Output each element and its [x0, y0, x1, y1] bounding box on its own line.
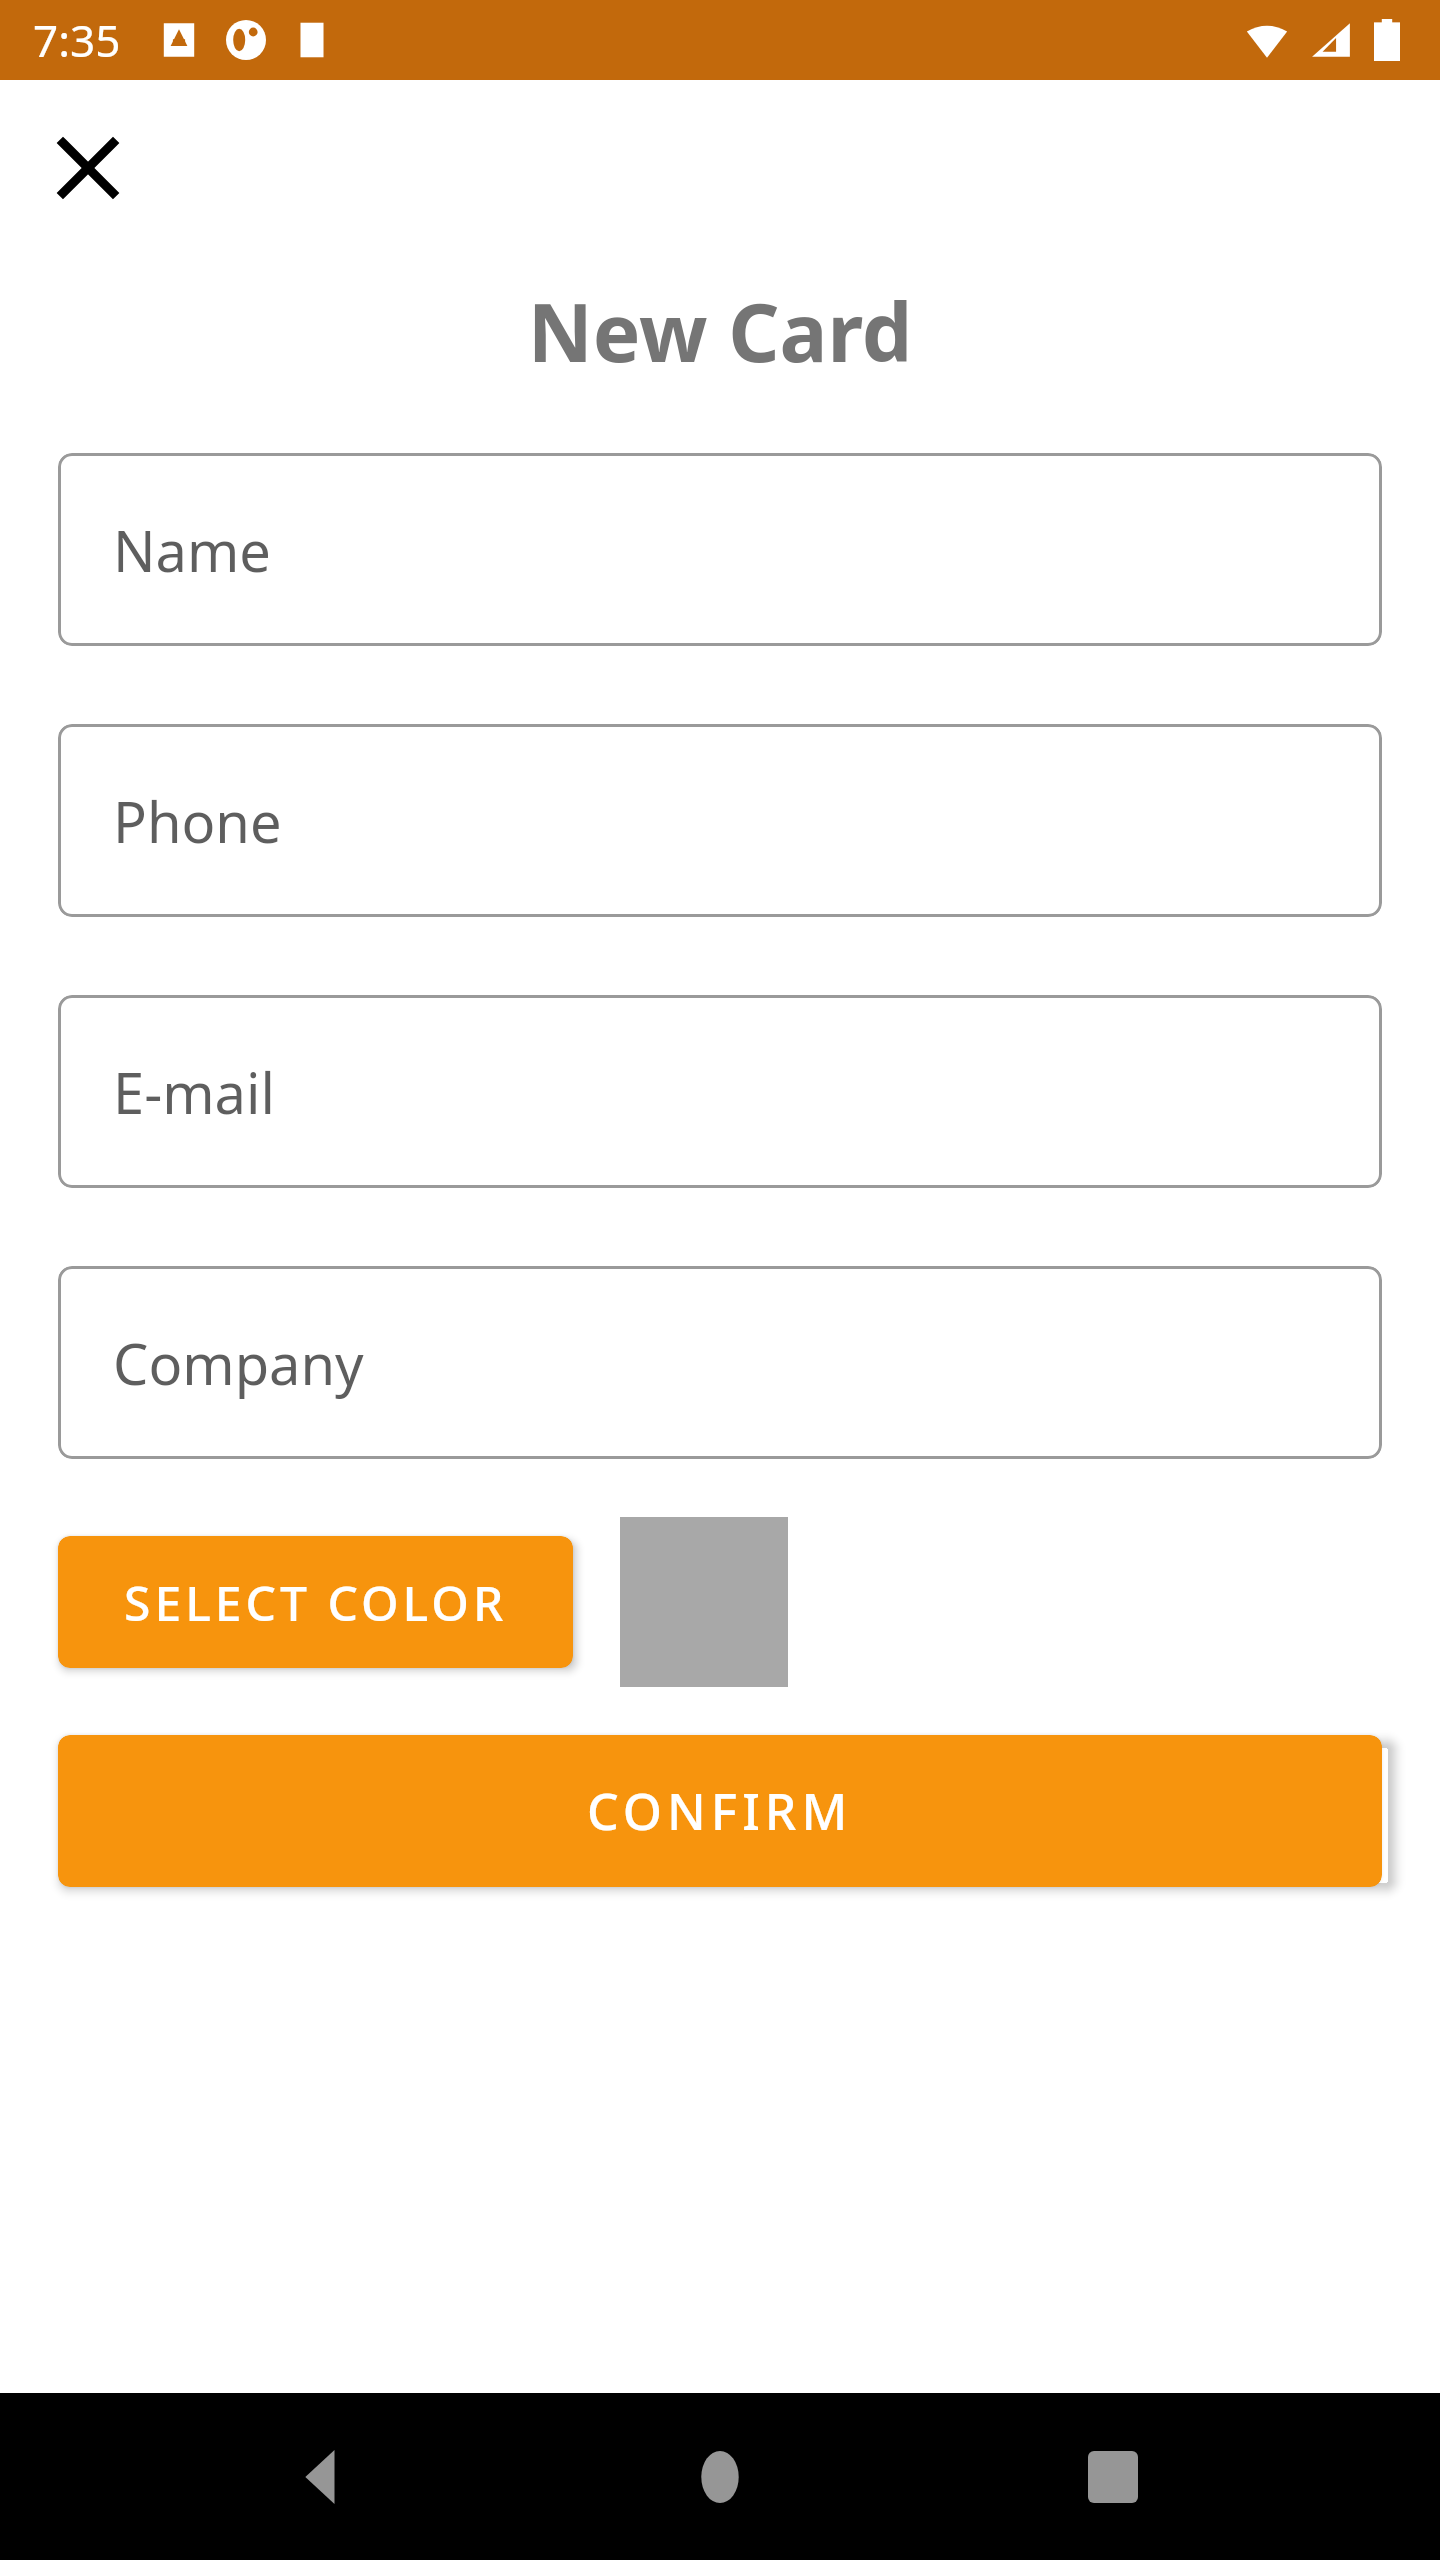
staticText: Name [113, 512, 271, 588]
button[interactable]: CONFIRM [58, 1735, 1382, 1887]
button[interactable]: SELECT COLOR [58, 1536, 573, 1668]
button[interactable]: Back [263, 2412, 393, 2542]
button[interactable]: Name [58, 453, 1382, 646]
staticText: Phone [113, 783, 282, 859]
staticText: SELECT COLOR [124, 1570, 508, 1635]
staticText: E-mail [113, 1054, 275, 1130]
button[interactable]: E-mail [58, 995, 1382, 1188]
staticText: Company [113, 1325, 364, 1401]
button[interactable]: Close [38, 118, 138, 218]
staticText: 7:35 [33, 10, 121, 70]
staticText: New Card [0, 276, 1440, 385]
button[interactable]: Home [655, 2412, 785, 2542]
button[interactable]: Company [58, 1266, 1382, 1459]
button[interactable]: Recents [1048, 2412, 1178, 2542]
button[interactable]: Phone [58, 724, 1382, 917]
staticText: CONFIRM [587, 1777, 853, 1845]
